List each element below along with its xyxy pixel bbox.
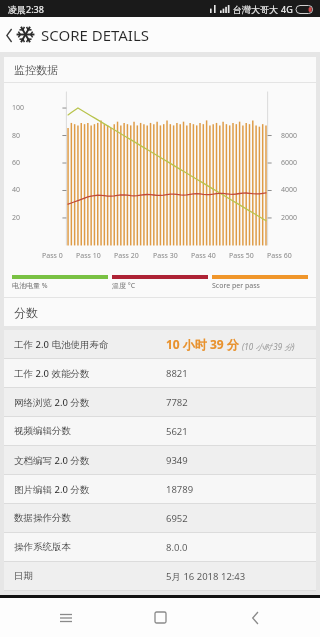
staticText: 10 小时 39 分 [166, 336, 239, 352]
staticText: Pass 30 [153, 251, 178, 261]
staticText: 台灣大哥大 [233, 4, 278, 15]
staticText: Pass 20 [114, 251, 139, 261]
staticText: 工作 2.0 效能分数 [14, 367, 166, 380]
button[interactable]: 操作系统版本 [4, 533, 316, 561]
staticText: 温度 °C [112, 281, 136, 291]
staticText: 8000 [281, 131, 298, 141]
staticText: SCORE DETAILS [41, 25, 150, 45]
staticText: 6952 [166, 512, 306, 525]
staticText: Score per pass [212, 281, 260, 291]
button[interactable]: 文档编写 2.0 分数 [4, 446, 316, 474]
staticText: 电池电量 % [12, 281, 48, 291]
staticText: (10 小时 39 分) [242, 341, 295, 352]
button[interactable]: 网络浏览 2.0 分数 [4, 388, 316, 416]
button[interactable]: Back [226, 598, 284, 637]
staticText: 监控数据 [14, 63, 58, 77]
staticText: 40 [12, 185, 21, 195]
button[interactable]: 工作 2.0 电池使用寿命 [4, 330, 316, 358]
staticText: 2000 [281, 213, 298, 223]
staticText: 网络浏览 2.0 分数 [14, 396, 166, 409]
button[interactable]: 日期 [4, 562, 316, 590]
staticText: 20 [12, 213, 21, 223]
button[interactable]: Recent apps [37, 598, 95, 637]
staticText: Pass 40 [191, 251, 216, 261]
staticText: 分数 [14, 305, 38, 320]
staticText: 60 [12, 158, 21, 168]
staticText: 操作系统版本 [14, 541, 166, 553]
staticText: 18789 [166, 483, 306, 496]
staticText: Pass 60 [267, 251, 292, 261]
staticText: Pass 10 [76, 251, 101, 261]
staticText: 9349 [166, 454, 306, 467]
staticText: 100 [12, 103, 25, 113]
button[interactable]: 视频编辑分数 [4, 417, 316, 445]
button[interactable]: 数据操作分数 [4, 504, 316, 532]
staticText: Pass 0 [42, 251, 63, 261]
button[interactable]: 图片编辑 2.0 分数 [4, 475, 316, 503]
staticText: 8.0.0 [166, 541, 306, 554]
staticText: 80 [12, 131, 21, 141]
button[interactable]: Home [131, 598, 189, 637]
other: Back [3, 21, 16, 49]
staticText: 图片编辑 2.0 分数 [14, 483, 166, 496]
staticText: 4000 [281, 185, 298, 195]
staticText: 数据操作分数 [14, 512, 166, 524]
staticText: 8821 [166, 367, 306, 380]
button[interactable]: Back [0, 17, 320, 52]
staticText: 工作 2.0 电池使用寿命 [14, 338, 166, 351]
staticText: 4G [281, 3, 293, 15]
staticText: 凌晨2:38 [8, 3, 44, 15]
staticText: 日期 [14, 570, 166, 582]
staticText: 视频编辑分数 [14, 425, 166, 437]
staticText: Pass 50 [229, 251, 254, 261]
staticText: 7782 [166, 396, 306, 409]
staticText: 5621 [166, 425, 306, 438]
button[interactable]: 工作 2.0 效能分数 [4, 359, 316, 387]
staticText: 5月 16 2018 12:43 [166, 570, 306, 583]
staticText: 6000 [281, 158, 298, 168]
staticText: 文档编写 2.0 分数 [14, 454, 166, 467]
